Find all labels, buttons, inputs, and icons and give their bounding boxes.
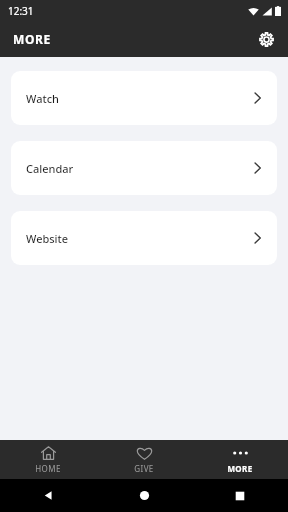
button[interactable]: Website [11,211,277,265]
button[interactable]: HOME [0,440,96,479]
button[interactable]: Recent apps [192,479,288,512]
button[interactable]: GIVE [96,440,192,479]
button[interactable]: Calendar [11,141,277,195]
staticText: HOME [35,463,61,474]
staticText: Calendar [26,161,74,176]
staticText: 12:31 [8,4,34,18]
staticText: MORE [227,463,253,474]
button[interactable]: Watch [11,71,277,125]
button[interactable]: Settings [252,25,280,53]
button[interactable]: MORE [192,440,288,479]
staticText: GIVE [134,463,154,474]
button[interactable]: Back [0,479,96,512]
staticText: MORE [13,31,51,47]
button[interactable]: Home [96,479,192,512]
staticText: Watch [26,91,59,106]
staticText: Website [26,231,69,246]
